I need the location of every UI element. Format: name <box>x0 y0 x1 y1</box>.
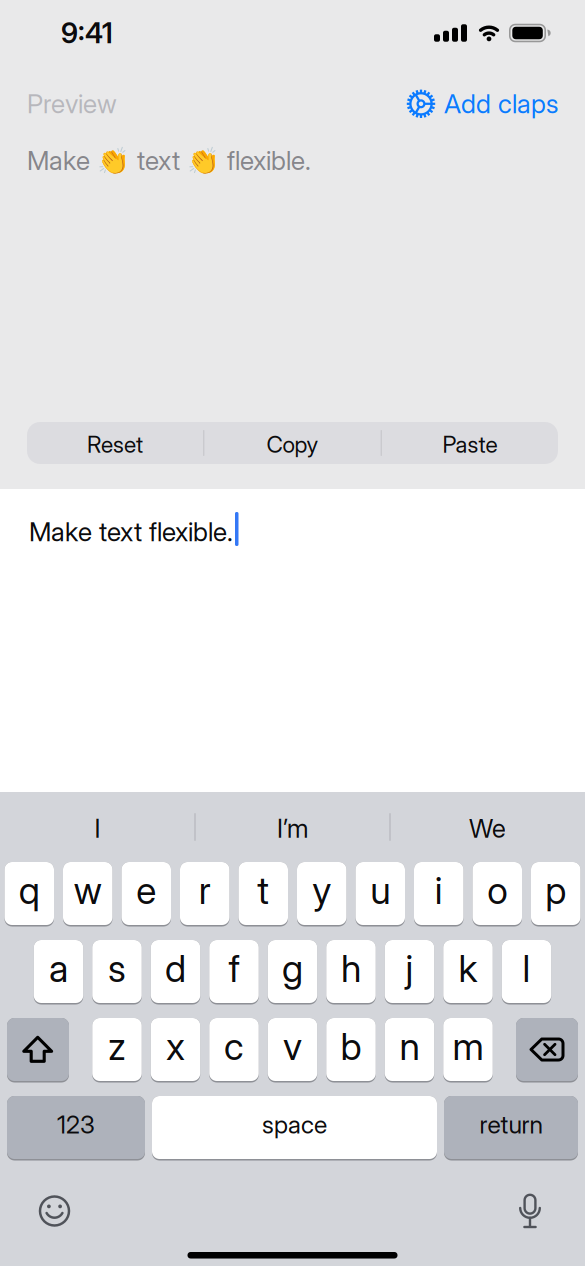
button[interactable]: I’m <box>195 792 390 862</box>
button[interactable]: Copy <box>204 422 381 464</box>
staticText: h <box>341 946 361 991</box>
button[interactable]: z <box>92 1018 142 1082</box>
staticText: Make 👏 text 👏 flexible. <box>27 145 311 176</box>
button[interactable]: s <box>92 940 142 1004</box>
staticText: y <box>312 868 331 913</box>
button[interactable]: space <box>152 1096 437 1160</box>
button[interactable]: n <box>385 1018 434 1082</box>
staticText: d <box>165 946 186 991</box>
button[interactable]: i <box>414 862 463 926</box>
button[interactable]: Emoji <box>38 1194 71 1227</box>
button[interactable]: d <box>151 940 200 1004</box>
button[interactable]: e <box>121 862 171 926</box>
button[interactable]: Add claps <box>406 88 558 120</box>
button[interactable]: h <box>326 940 376 1004</box>
button[interactable]: w <box>63 862 112 926</box>
button[interactable]: Paste <box>382 422 558 464</box>
button[interactable]: p <box>531 862 580 926</box>
staticText: w <box>74 868 102 913</box>
staticText: a <box>49 946 68 991</box>
staticText: Reset <box>87 431 143 458</box>
button[interactable]: m <box>443 1018 493 1082</box>
button[interactable]: return <box>444 1096 578 1160</box>
staticText: e <box>136 868 156 913</box>
button[interactable]: a <box>34 940 83 1004</box>
staticText: t <box>257 868 269 913</box>
staticText: f <box>228 946 239 991</box>
button[interactable]: v <box>268 1018 317 1082</box>
button[interactable]: o <box>472 862 522 926</box>
staticText: Preview <box>27 88 117 120</box>
button[interactable]: c <box>209 1018 259 1082</box>
staticText: r <box>199 868 211 913</box>
button[interactable]: x <box>151 1018 200 1082</box>
staticText: k <box>458 946 477 991</box>
button[interactable]: q <box>4 862 54 926</box>
staticText: z <box>108 1024 126 1069</box>
staticText: p <box>545 868 566 913</box>
button[interactable]: b <box>326 1018 376 1082</box>
staticText: m <box>452 1024 483 1069</box>
staticText: Make text flexible. <box>29 516 233 548</box>
button[interactable]: I <box>0 792 195 862</box>
staticText: I’m <box>277 813 308 844</box>
button[interactable]: l <box>502 940 551 1004</box>
button[interactable]: Dictate <box>515 1192 545 1230</box>
button[interactable]: Shift <box>7 1018 69 1082</box>
button[interactable]: 123 <box>7 1096 145 1160</box>
staticText: b <box>340 1024 361 1069</box>
staticText: u <box>370 868 390 913</box>
staticText: I <box>94 813 100 844</box>
staticText: g <box>282 946 303 991</box>
staticText: 123 <box>57 1110 95 1139</box>
button[interactable]: j <box>385 940 434 1004</box>
staticText: n <box>399 1024 419 1069</box>
staticText: q <box>19 868 40 913</box>
button[interactable]: y <box>297 862 346 926</box>
staticText: o <box>487 868 507 913</box>
staticText: space <box>262 1110 327 1139</box>
staticText: j <box>405 946 413 991</box>
button[interactable]: Reset <box>27 422 203 464</box>
staticText: x <box>166 1024 185 1069</box>
button[interactable]: g <box>268 940 317 1004</box>
button[interactable]: We <box>390 792 585 862</box>
button[interactable]: r <box>180 862 229 926</box>
staticText: 9:41 <box>61 16 113 50</box>
staticText: Add claps <box>444 88 558 120</box>
button[interactable]: u <box>355 862 405 926</box>
staticText: v <box>283 1024 302 1069</box>
staticText: return <box>479 1110 542 1139</box>
button[interactable]: f <box>209 940 259 1004</box>
button[interactable]: k <box>443 940 493 1004</box>
staticText: We <box>469 813 506 844</box>
button[interactable]: t <box>238 862 288 926</box>
staticText: i <box>435 868 443 913</box>
button[interactable]: Delete <box>516 1018 578 1082</box>
staticText: l <box>522 946 530 991</box>
staticText: c <box>224 1024 244 1069</box>
staticText: Paste <box>442 431 497 458</box>
staticText: s <box>108 946 126 991</box>
staticText: Copy <box>266 431 318 458</box>
